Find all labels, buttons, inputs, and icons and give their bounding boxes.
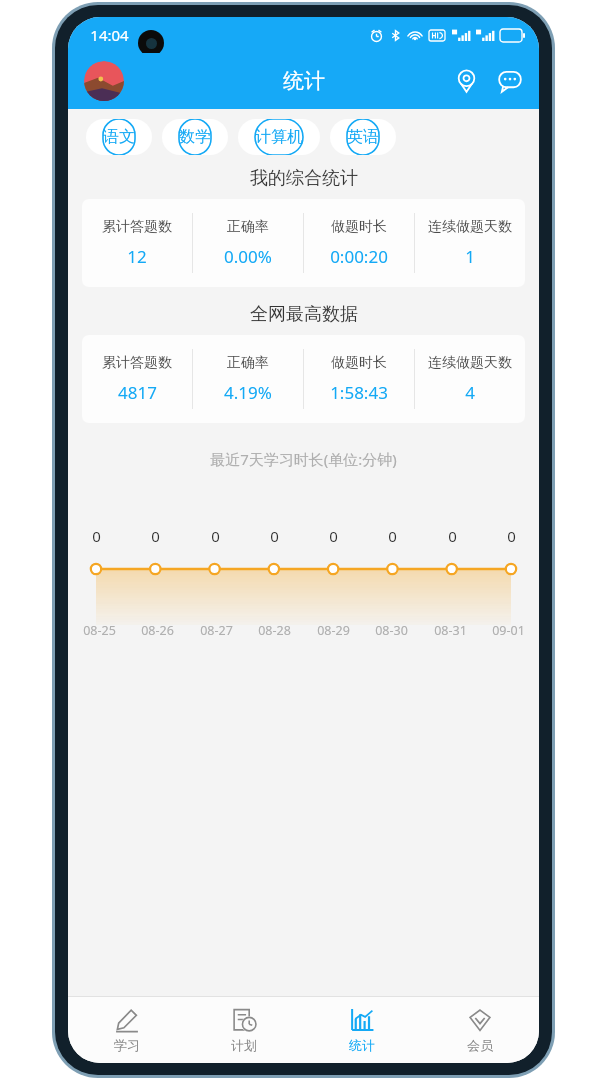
staticText: 统计 bbox=[349, 1037, 375, 1053]
staticText: 08-30 bbox=[375, 622, 408, 639]
staticText: 数学 bbox=[179, 127, 211, 147]
staticText: 正确率 bbox=[227, 218, 269, 236]
staticText: 0 bbox=[448, 526, 457, 546]
button[interactable]: Location bbox=[451, 66, 481, 96]
staticText: 08-31 bbox=[434, 622, 467, 639]
staticText: 0 bbox=[270, 526, 279, 546]
staticText: 做题时长 bbox=[331, 354, 387, 372]
staticText: 0.00% bbox=[224, 245, 272, 268]
button[interactable]: 计划 bbox=[185, 997, 303, 1063]
staticText: 累计答题数 bbox=[102, 218, 172, 236]
staticText: 学习 bbox=[114, 1037, 140, 1053]
button[interactable]: 累计答题数 bbox=[82, 335, 525, 423]
staticText: 做题时长 bbox=[331, 218, 387, 236]
button[interactable]: 计算机 bbox=[238, 119, 320, 155]
button[interactable]: Messages bbox=[495, 66, 525, 96]
staticText: 计划 bbox=[231, 1037, 257, 1053]
staticText: 累计答题数 bbox=[102, 354, 172, 372]
staticText: 统计 bbox=[283, 68, 325, 94]
staticText: 4817 bbox=[118, 381, 157, 404]
staticText: 1 bbox=[465, 245, 475, 268]
staticText: 12 bbox=[127, 245, 147, 268]
staticText: 08-27 bbox=[200, 622, 233, 639]
button[interactable]: 数学 bbox=[162, 119, 228, 155]
staticText: 14:04 bbox=[90, 25, 129, 45]
button[interactable]: 累计答题数 bbox=[82, 199, 525, 287]
staticText: 08-25 bbox=[83, 622, 116, 639]
staticText: 1:58:43 bbox=[330, 381, 388, 404]
button[interactable]: Profile bbox=[84, 61, 124, 101]
staticText: 0 bbox=[388, 526, 397, 546]
staticText: 08-26 bbox=[141, 622, 174, 639]
button[interactable]: 统计 bbox=[303, 997, 421, 1063]
staticText: 计算机 bbox=[255, 127, 303, 147]
staticText: 0 bbox=[92, 526, 101, 546]
button[interactable]: 语文 bbox=[86, 119, 152, 155]
staticText: 0 bbox=[329, 526, 338, 546]
staticText: 英语 bbox=[347, 127, 379, 147]
staticText: 4 bbox=[465, 381, 475, 404]
staticText: 0 bbox=[211, 526, 220, 546]
staticText: 全网最高数据 bbox=[250, 303, 358, 326]
button[interactable]: 英语 bbox=[330, 119, 396, 155]
staticText: 语文 bbox=[103, 127, 135, 147]
staticText: 最近7天学习时长(单位:分钟) bbox=[210, 449, 397, 469]
staticText: 我的综合统计 bbox=[250, 167, 358, 190]
staticText: 08-29 bbox=[317, 622, 350, 639]
staticText: 09-01 bbox=[492, 622, 525, 639]
staticText: 0 bbox=[507, 526, 516, 546]
staticText: 连续做题天数 bbox=[428, 218, 512, 236]
staticText: 连续做题天数 bbox=[428, 354, 512, 372]
button[interactable]: 学习 bbox=[68, 997, 185, 1063]
staticText: 0 bbox=[151, 526, 160, 546]
staticText: 4.19% bbox=[224, 381, 272, 404]
staticText: 正确率 bbox=[227, 354, 269, 372]
staticText: 08-28 bbox=[258, 622, 291, 639]
button[interactable]: 会员 bbox=[421, 997, 539, 1063]
staticText: 0:00:20 bbox=[330, 245, 388, 268]
staticText: 会员 bbox=[467, 1037, 493, 1053]
